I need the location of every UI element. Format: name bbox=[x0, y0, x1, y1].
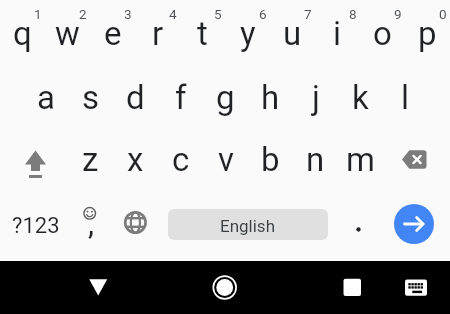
staticText: p bbox=[418, 14, 437, 53]
staticText: 0 bbox=[439, 6, 447, 22]
button[interactable]: v bbox=[203, 128, 248, 192]
staticText: v bbox=[218, 140, 234, 179]
staticText: q bbox=[13, 14, 32, 53]
staticText: c bbox=[172, 140, 190, 179]
staticText: r bbox=[152, 14, 164, 53]
button[interactable]: f bbox=[158, 64, 203, 128]
staticText: h bbox=[261, 78, 280, 117]
button[interactable] bbox=[383, 128, 450, 192]
staticText: b bbox=[261, 140, 280, 179]
staticText: m bbox=[346, 140, 375, 179]
staticText: x bbox=[127, 140, 144, 179]
button[interactable]: 2 bbox=[45, 0, 90, 64]
staticText: y bbox=[240, 14, 256, 53]
button[interactable]: x bbox=[113, 128, 158, 192]
staticText: 7 bbox=[304, 6, 312, 22]
staticText: u bbox=[283, 14, 302, 53]
button[interactable]: m bbox=[338, 128, 383, 192]
staticText: w bbox=[55, 14, 80, 53]
button[interactable]: z bbox=[68, 128, 113, 192]
staticText: 3 bbox=[124, 6, 132, 22]
button[interactable]: 7 bbox=[270, 0, 315, 64]
staticText: 4 bbox=[169, 6, 177, 22]
button[interactable]: l bbox=[383, 64, 428, 128]
staticText: ?123 bbox=[12, 213, 60, 239]
staticText: , bbox=[88, 205, 95, 241]
staticText: j bbox=[312, 78, 320, 117]
button[interactable] bbox=[390, 261, 450, 314]
button[interactable] bbox=[0, 128, 68, 192]
button[interactable]: k bbox=[338, 64, 383, 128]
button[interactable] bbox=[383, 192, 450, 256]
button[interactable]: n bbox=[293, 128, 338, 192]
staticText: 5 bbox=[214, 6, 222, 22]
button[interactable] bbox=[130, 261, 260, 314]
staticText: k bbox=[352, 78, 369, 117]
staticText: 9 bbox=[394, 6, 402, 22]
staticText: s bbox=[82, 78, 100, 117]
button[interactable]: 8 bbox=[315, 0, 360, 64]
button[interactable]: d bbox=[113, 64, 158, 128]
button[interactable]: 0 bbox=[405, 0, 450, 64]
button[interactable]: 6 bbox=[225, 0, 270, 64]
button[interactable] bbox=[260, 261, 390, 314]
button[interactable] bbox=[0, 261, 130, 314]
staticText: 8 bbox=[349, 6, 357, 22]
staticText: l bbox=[401, 78, 410, 117]
staticText: g bbox=[216, 78, 235, 117]
button[interactable]: 3 bbox=[90, 0, 135, 64]
button[interactable] bbox=[113, 192, 158, 256]
button[interactable]: ?123 bbox=[0, 192, 68, 256]
button[interactable] bbox=[338, 192, 383, 256]
staticText: t bbox=[197, 14, 208, 53]
button[interactable]: j bbox=[293, 64, 338, 128]
button[interactable]: 1 bbox=[0, 0, 45, 64]
button[interactable]: 4 bbox=[135, 0, 180, 64]
button[interactable]: h bbox=[248, 64, 293, 128]
button[interactable]: c bbox=[158, 128, 203, 192]
button[interactable]: 9 bbox=[360, 0, 405, 64]
button[interactable]: b bbox=[248, 128, 293, 192]
staticText: z bbox=[82, 140, 99, 179]
staticText: o bbox=[373, 14, 392, 53]
staticText: e bbox=[104, 14, 122, 53]
button[interactable]: a bbox=[23, 64, 68, 128]
staticText: d bbox=[126, 78, 145, 117]
staticText: n bbox=[306, 140, 325, 179]
button[interactable]: 5 bbox=[180, 0, 225, 64]
button[interactable]: English bbox=[158, 192, 338, 256]
staticText: English bbox=[220, 216, 276, 236]
staticText: i bbox=[333, 14, 342, 53]
staticText: 6 bbox=[259, 6, 267, 22]
staticText: 2 bbox=[79, 6, 87, 22]
button[interactable]: g bbox=[203, 64, 248, 128]
staticText: f bbox=[175, 78, 187, 117]
button[interactable]: , bbox=[68, 192, 113, 256]
staticText: 1 bbox=[34, 6, 42, 22]
staticText: a bbox=[37, 78, 55, 117]
button[interactable]: s bbox=[68, 64, 113, 128]
